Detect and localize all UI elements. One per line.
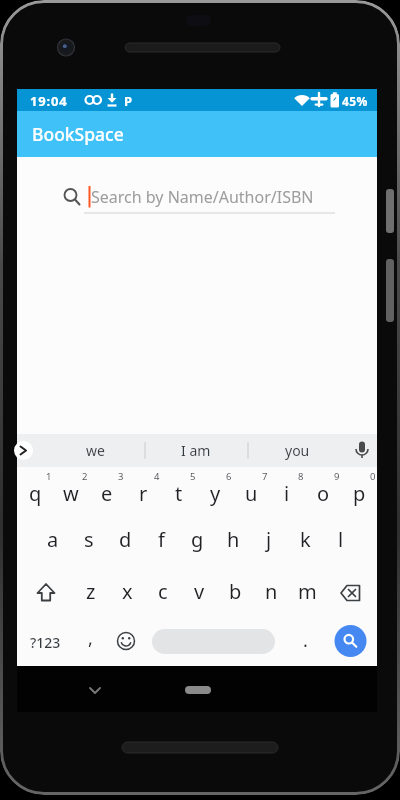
staticText: z: [86, 578, 96, 605]
button[interactable]: k: [287, 525, 323, 553]
button[interactable]: [345, 434, 377, 467]
button[interactable]: g: [179, 525, 215, 553]
button[interactable]: m: [289, 577, 325, 605]
staticText: n: [265, 578, 278, 605]
button[interactable]: ,: [72, 624, 108, 652]
staticText: ?123: [30, 633, 61, 652]
staticText: 8: [298, 470, 304, 483]
button[interactable]: p: [341, 479, 377, 507]
staticText: q: [29, 480, 42, 507]
button[interactable]: [77, 675, 113, 703]
staticText: w: [63, 480, 79, 507]
button[interactable]: w: [53, 479, 89, 507]
staticText: 6: [226, 470, 232, 483]
button[interactable]: [332, 623, 369, 659]
staticText: 19:04: [30, 92, 68, 110]
button[interactable]: [179, 675, 217, 703]
button[interactable]: t: [161, 479, 197, 507]
button[interactable]: BookSpace: [17, 111, 377, 157]
button[interactable]: [28, 577, 64, 609]
staticText: 9: [334, 470, 340, 483]
button[interactable]: s: [71, 525, 107, 553]
staticText: f: [158, 526, 165, 553]
staticText: 2: [82, 470, 88, 483]
button[interactable]: c: [145, 577, 181, 605]
button[interactable]: we: [50, 434, 140, 467]
staticText: p: [353, 480, 366, 507]
staticText: d: [119, 526, 132, 553]
staticText: .: [303, 628, 308, 653]
staticText: b: [229, 578, 242, 605]
staticText: you: [285, 441, 310, 460]
button[interactable]: o: [305, 479, 341, 507]
staticText: P: [124, 92, 133, 110]
button[interactable]: e: [89, 479, 125, 507]
staticText: 45%: [342, 93, 368, 109]
staticText: ,: [88, 626, 93, 651]
staticText: Search by Name/Author/ISBN: [91, 186, 314, 208]
staticText: 0: [370, 470, 376, 483]
staticText: c: [158, 578, 168, 605]
staticText: 7: [262, 470, 268, 483]
button[interactable]: [152, 629, 275, 654]
button[interactable]: i: [269, 479, 305, 507]
staticText: r: [139, 480, 148, 507]
staticText: k: [300, 526, 311, 553]
button[interactable]: a: [35, 525, 71, 553]
staticText: t: [175, 480, 183, 507]
button[interactable]: Search by Name/Author/ISBN: [91, 185, 341, 209]
button[interactable]: n: [253, 577, 289, 605]
button[interactable]: u: [233, 479, 269, 507]
button[interactable]: [108, 625, 144, 657]
button[interactable]: y: [197, 479, 233, 507]
staticText: v: [194, 578, 205, 605]
button[interactable]: q: [17, 479, 53, 507]
staticText: l: [338, 526, 344, 553]
staticText: a: [47, 526, 59, 553]
button[interactable]: .: [287, 626, 323, 654]
staticText: 4: [154, 470, 160, 483]
staticText: BookSpace: [32, 122, 124, 146]
button[interactable]: h: [215, 525, 251, 553]
staticText: I am: [181, 441, 211, 460]
button[interactable]: z: [73, 577, 109, 605]
button[interactable]: v: [181, 577, 217, 605]
button[interactable]: x: [109, 577, 145, 605]
staticText: e: [101, 480, 113, 507]
staticText: j: [266, 526, 272, 553]
staticText: x: [122, 578, 133, 605]
staticText: i: [284, 480, 290, 507]
button[interactable]: r: [125, 479, 161, 507]
staticText: m: [298, 578, 317, 605]
button[interactable]: ?123: [23, 627, 68, 657]
button[interactable]: I am: [151, 434, 241, 467]
button[interactable]: [17, 434, 37, 467]
button[interactable]: b: [217, 577, 253, 605]
staticText: o: [317, 480, 330, 507]
staticText: y: [210, 480, 221, 507]
button[interactable]: you: [252, 434, 342, 467]
staticText: 3: [118, 470, 124, 483]
button[interactable]: j: [251, 525, 287, 553]
staticText: s: [84, 526, 94, 553]
staticText: h: [227, 526, 240, 553]
button[interactable]: d: [107, 525, 143, 553]
button[interactable]: [332, 577, 368, 609]
button[interactable]: f: [143, 525, 179, 553]
staticText: u: [245, 480, 258, 507]
staticText: 1: [46, 470, 52, 483]
staticText: 5: [190, 470, 196, 483]
staticText: g: [191, 526, 204, 553]
button[interactable]: l: [323, 525, 359, 553]
staticText: we: [86, 441, 105, 460]
